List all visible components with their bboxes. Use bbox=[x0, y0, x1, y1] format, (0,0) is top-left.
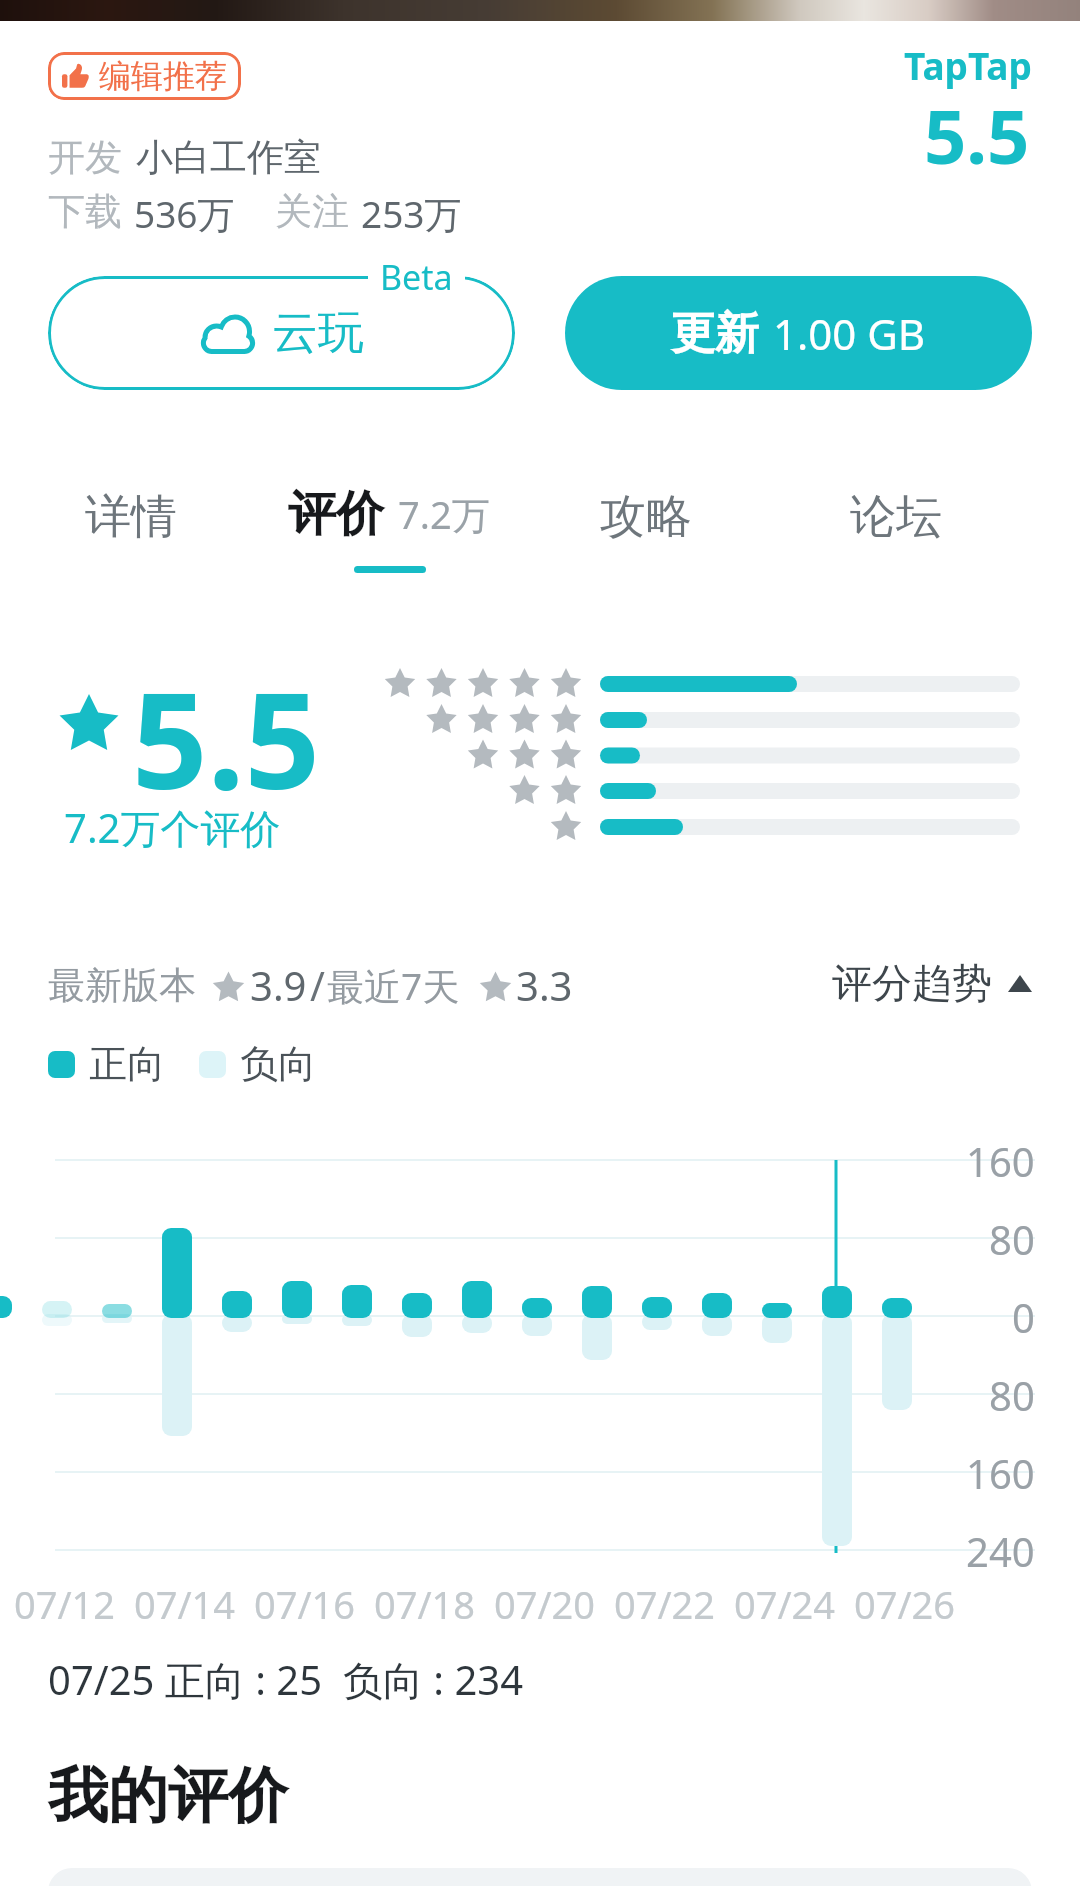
staticText: 正向 bbox=[89, 1040, 165, 1088]
staticText: 07/20 bbox=[494, 1578, 596, 1630]
staticText: 3.3 bbox=[516, 958, 573, 1012]
staticText: 07/18 bbox=[374, 1578, 476, 1630]
staticText: 1.00 GB bbox=[773, 305, 926, 362]
staticText: 07/24 bbox=[734, 1578, 836, 1630]
staticText: 07/16 bbox=[254, 1578, 356, 1630]
staticText: 240 bbox=[966, 1524, 1035, 1578]
staticText: 536万 bbox=[134, 188, 235, 239]
staticText: 编辑推荐 bbox=[99, 56, 227, 96]
staticText: 80 bbox=[989, 1368, 1035, 1422]
button[interactable]: 评分趋势 bbox=[832, 958, 1032, 1008]
staticText: 07/14 bbox=[134, 1578, 236, 1630]
button[interactable]: 更新 bbox=[565, 276, 1032, 390]
staticText: 最近7天 bbox=[327, 960, 460, 1011]
staticText: 07/22 bbox=[614, 1578, 716, 1630]
staticText: 7.2万个评价 bbox=[64, 800, 281, 855]
staticText: 开发 bbox=[48, 134, 122, 181]
staticText: 3.9 bbox=[250, 958, 307, 1012]
staticText: 云玩 bbox=[272, 304, 364, 362]
staticText: 160 bbox=[966, 1134, 1035, 1188]
button[interactable]: 论坛 bbox=[850, 488, 942, 546]
staticText: 253万 bbox=[361, 188, 462, 239]
staticText: TapTap bbox=[904, 40, 1032, 90]
staticText: 160 bbox=[966, 1446, 1035, 1500]
staticText: 评价 bbox=[288, 484, 384, 544]
staticText: 详情 bbox=[85, 488, 177, 546]
staticText: 关注 bbox=[275, 188, 349, 235]
staticText: 5.5 bbox=[924, 85, 1030, 186]
staticText: 最新版本 bbox=[48, 962, 196, 1009]
staticText: 0 bbox=[1012, 1290, 1035, 1344]
staticText: Beta bbox=[380, 254, 453, 300]
button[interactable]: 云玩 bbox=[48, 276, 515, 390]
staticText: 5.5 bbox=[132, 648, 321, 828]
staticText: 评分趋势 bbox=[832, 958, 992, 1008]
staticText: / bbox=[310, 958, 325, 1012]
button[interactable]: 详情 bbox=[85, 488, 177, 546]
staticText: 下载 bbox=[48, 188, 122, 235]
staticText: 07/25 正向 : 25 负向 : 234 bbox=[48, 1652, 524, 1707]
staticText: 7.2万 bbox=[398, 488, 490, 540]
staticText: 负向 bbox=[240, 1040, 316, 1088]
staticText: 我的评价 bbox=[48, 1758, 288, 1834]
staticText: 论坛 bbox=[850, 488, 942, 546]
staticText: 07/12 bbox=[14, 1578, 116, 1630]
button[interactable]: 编辑推荐 bbox=[48, 52, 241, 100]
staticText: 更新 bbox=[671, 306, 759, 361]
button[interactable]: 评价 bbox=[288, 484, 490, 544]
button[interactable]: 攻略 bbox=[600, 488, 692, 546]
staticText: 80 bbox=[989, 1212, 1035, 1266]
staticText: 攻略 bbox=[600, 488, 692, 546]
staticText: 小白工作室 bbox=[136, 134, 321, 181]
staticText: 07/26 bbox=[854, 1578, 956, 1630]
